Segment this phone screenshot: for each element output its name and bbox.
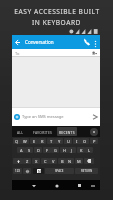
staticText: Y — [58, 139, 61, 144]
staticText: ALL — [17, 130, 24, 134]
button[interactable]: K — [77, 147, 85, 153]
button[interactable]: Back — [13, 38, 21, 46]
button[interactable]: X — [32, 158, 40, 164]
staticText: I — [76, 139, 78, 144]
button[interactable]: T — [47, 138, 55, 144]
button[interactable]: G — [51, 147, 59, 153]
button[interactable]: ALL — [14, 130, 27, 134]
staticText: X — [35, 159, 38, 164]
button[interactable]: O — [81, 138, 89, 144]
staticText: S — [28, 148, 31, 153]
button[interactable]: Switch keyboard — [88, 181, 97, 190]
button[interactable]: H — [60, 147, 68, 153]
button[interactable]: Keyboard settings — [90, 128, 98, 136]
staticText: E — [33, 139, 36, 144]
button[interactable]: S — [25, 147, 33, 153]
staticText: Conversation — [25, 39, 54, 45]
staticText: Z — [26, 159, 29, 164]
button[interactable]: N — [33, 168, 44, 174]
staticText: A — [20, 148, 23, 153]
button[interactable]: Add attachment — [14, 114, 20, 120]
staticText: F — [46, 148, 49, 153]
staticText: FAVORITES — [33, 130, 53, 134]
button[interactable]: U — [64, 138, 72, 144]
button[interactable]: RECENTS — [57, 127, 77, 136]
button[interactable]: 123 — [13, 168, 22, 174]
button[interactable] — [23, 168, 31, 174]
staticText: V — [52, 159, 55, 164]
staticText: T — [50, 139, 53, 144]
staticText: K — [80, 148, 83, 153]
button[interactable]: Back — [29, 181, 38, 190]
button[interactable]: F — [43, 147, 51, 153]
button[interactable] — [84, 158, 94, 164]
staticText: P — [93, 139, 96, 144]
button[interactable]: M — [75, 158, 83, 164]
staticText: D — [37, 148, 40, 153]
button[interactable]: E — [30, 138, 38, 144]
staticText: Q — [15, 139, 19, 144]
button[interactable]: J — [68, 147, 76, 153]
button[interactable]: Send — [90, 112, 99, 121]
button[interactable]: P — [90, 138, 98, 144]
button[interactable]: D — [34, 147, 42, 153]
button[interactable]: Q — [13, 138, 21, 144]
button[interactable]: Home — [52, 181, 61, 190]
button[interactable]: Recent apps — [75, 181, 84, 190]
button[interactable]: Y — [55, 138, 63, 144]
button[interactable]: SPACE — [45, 168, 74, 174]
button[interactable]: FAVORITES — [30, 130, 56, 134]
staticText: W — [23, 139, 27, 144]
button[interactable] — [13, 158, 23, 164]
staticText: M — [77, 159, 81, 164]
staticText: RECENTS — [59, 130, 75, 134]
button[interactable]: B — [58, 158, 66, 164]
button[interactable]: V — [49, 158, 57, 164]
staticText: H — [63, 148, 66, 153]
staticText: L — [88, 148, 91, 153]
button[interactable]: Add contact — [91, 50, 98, 57]
staticText: EASY ACCESSIBLE BUILT — [14, 7, 100, 16]
staticText: B — [61, 159, 64, 164]
staticText: IN KEYBOARD — [32, 18, 81, 27]
staticText: To — [15, 51, 20, 56]
staticText: RETURN — [81, 169, 93, 173]
staticText: N — [38, 169, 41, 173]
staticText: 123 — [15, 169, 20, 173]
button[interactable]: RETURN — [75, 168, 98, 174]
staticText: J — [71, 148, 73, 153]
staticText: SPACE — [55, 169, 64, 173]
button[interactable]: R — [38, 138, 46, 144]
button[interactable]: N — [66, 158, 74, 164]
button[interactable]: Call — [82, 37, 92, 47]
staticText: R — [41, 139, 44, 144]
staticText: Type an SMS message — [22, 114, 64, 119]
button[interactable]: C — [41, 158, 49, 164]
staticText: C — [44, 159, 47, 164]
button[interactable]: More options — [92, 39, 99, 46]
button[interactable]: I — [73, 138, 81, 144]
button[interactable]: L — [85, 147, 93, 153]
staticText: U — [67, 139, 70, 144]
staticText: G — [54, 148, 57, 153]
staticText: N — [68, 159, 72, 164]
button[interactable]: A — [17, 147, 25, 153]
button[interactable]: Z — [23, 158, 31, 164]
staticText: O — [83, 139, 87, 144]
button[interactable]: W — [21, 138, 29, 144]
